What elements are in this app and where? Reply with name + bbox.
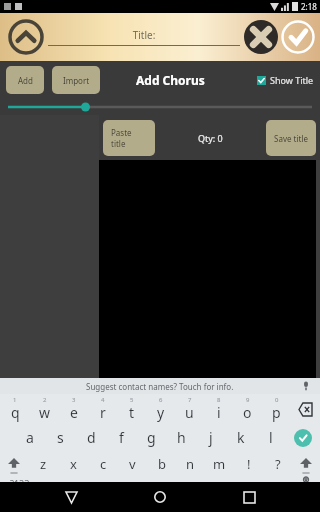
- button[interactable]: a: [14, 424, 45, 451]
- button[interactable]: Recents: [231, 482, 267, 512]
- button[interactable]: Voice input: [300, 380, 312, 392]
- staticText: r: [100, 403, 106, 422]
- button[interactable]: Backspace: [291, 394, 320, 424]
- staticText: Qty: 0: [198, 132, 223, 144]
- button[interactable]: Cancel: [244, 20, 278, 54]
- button[interactable]: ?123: [0, 477, 40, 482]
- staticText: Add: [18, 75, 33, 86]
- staticText: v: [129, 455, 136, 473]
- button[interactable]: 9: [233, 394, 262, 424]
- button[interactable]: v: [118, 451, 147, 477]
- staticText: t: [129, 403, 135, 422]
- button[interactable]: m: [205, 451, 234, 477]
- staticText: o: [243, 403, 252, 422]
- button[interactable]: Import: [52, 66, 100, 94]
- button[interactable]: Collapse: [8, 19, 44, 55]
- button[interactable]: f: [106, 424, 136, 451]
- staticText: 8: [217, 396, 221, 404]
- staticText: 4: [101, 396, 105, 404]
- staticText: y: [157, 403, 165, 422]
- staticText: n: [186, 455, 195, 473]
- button[interactable]: l: [256, 424, 286, 451]
- staticText: Title:: [48, 28, 240, 42]
- staticText: 0: [275, 396, 279, 404]
- staticText: 6: [159, 396, 163, 404]
- staticText: w: [39, 403, 51, 422]
- staticText: k: [237, 428, 245, 447]
- staticText: Import: [63, 75, 90, 86]
- staticText: a: [26, 428, 34, 447]
- button[interactable]: 1: [0, 394, 30, 424]
- button[interactable]: z: [28, 451, 58, 477]
- staticText: 3: [72, 396, 76, 404]
- button[interactable]: 3: [59, 394, 88, 424]
- button[interactable]: !: [234, 451, 263, 477]
- staticText: e: [70, 403, 78, 422]
- staticText: Paste title: [111, 127, 147, 149]
- staticText: 2:18: [301, 1, 317, 12]
- staticText: b: [158, 455, 166, 473]
- button[interactable]: Accept: [281, 20, 315, 54]
- button[interactable]: s: [45, 424, 76, 451]
- button[interactable]: Suggest contact names? Touch for info.: [86, 381, 234, 392]
- staticText: z: [40, 455, 47, 473]
- staticText: ?: [275, 455, 281, 473]
- button[interactable]: d: [76, 424, 106, 451]
- button[interactable]: 6: [146, 394, 175, 424]
- button[interactable]: Enter: [286, 424, 320, 451]
- button[interactable]: 0: [262, 394, 291, 424]
- button[interactable]: Paste title: [103, 120, 155, 156]
- staticText: 1: [13, 396, 17, 404]
- button[interactable]: 4: [88, 394, 117, 424]
- staticText: 2: [43, 396, 47, 404]
- button[interactable]: g: [136, 424, 166, 451]
- button[interactable]: x: [58, 451, 88, 477]
- staticText: u: [185, 403, 194, 422]
- button[interactable]: Home: [142, 482, 178, 512]
- staticText: h: [177, 428, 186, 447]
- staticText: d: [87, 428, 96, 447]
- staticText: p: [272, 403, 281, 422]
- staticText: Add Chorus: [136, 72, 205, 88]
- staticText: j: [209, 428, 213, 447]
- button[interactable]: 5: [117, 394, 146, 424]
- button[interactable]: ?: [263, 451, 292, 477]
- button[interactable]: 8: [204, 394, 233, 424]
- button[interactable]: n: [176, 451, 205, 477]
- button[interactable]: Size slider: [0, 99, 320, 115]
- button[interactable]: Show Title: [257, 74, 314, 86]
- button[interactable]: Emoji: [292, 477, 320, 482]
- staticText: l: [269, 428, 273, 447]
- staticText: c: [100, 455, 107, 473]
- staticText: 7: [188, 396, 192, 404]
- button[interactable]: 7: [175, 394, 204, 424]
- staticText: g: [147, 428, 156, 447]
- button[interactable]: 2: [30, 394, 59, 424]
- staticText: m: [213, 455, 226, 473]
- staticText: f: [119, 428, 124, 447]
- button[interactable]: c: [88, 451, 118, 477]
- button[interactable]: Add: [6, 66, 44, 94]
- button[interactable]: Save title: [266, 120, 316, 156]
- button[interactable]: Shift: [0, 451, 28, 477]
- button[interactable]: j: [196, 424, 226, 451]
- staticText: Save title: [274, 133, 308, 144]
- button[interactable]: b: [147, 451, 176, 477]
- staticText: x: [70, 455, 77, 473]
- staticText: s: [57, 428, 64, 447]
- button[interactable]: Back: [53, 482, 89, 512]
- button[interactable]: Title:: [48, 28, 240, 46]
- staticText: 5: [130, 396, 134, 404]
- staticText: i: [217, 403, 221, 422]
- staticText: Show Title: [270, 74, 314, 86]
- staticText: 9: [246, 396, 250, 404]
- staticText: q: [11, 403, 20, 422]
- button[interactable]: Shift: [292, 451, 320, 477]
- staticText: ?123: [10, 477, 30, 482]
- button[interactable]: h: [166, 424, 196, 451]
- button[interactable]: k: [226, 424, 256, 451]
